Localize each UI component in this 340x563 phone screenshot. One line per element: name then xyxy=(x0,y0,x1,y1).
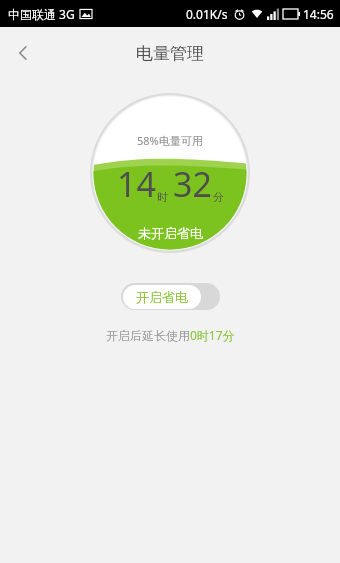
staticText: 14:56 xyxy=(303,6,334,22)
staticText: 未开启省电 xyxy=(138,225,203,241)
button[interactable]: 开启省电 xyxy=(121,283,220,310)
staticText: 开启省电 xyxy=(136,289,188,305)
staticText: 0.01K/s xyxy=(186,6,228,22)
staticText: 分 xyxy=(213,190,224,204)
button[interactable]: Back xyxy=(0,30,46,76)
staticText: 时 xyxy=(157,190,168,204)
staticText: 14 xyxy=(117,161,156,207)
staticText: 开启后延长使用0时17分 xyxy=(106,327,235,343)
staticText: 中国联通 3G xyxy=(8,6,75,22)
staticText: 58%电量可用 xyxy=(137,133,203,148)
staticText: 电量管理 xyxy=(136,43,204,64)
staticText: 32 xyxy=(173,161,212,207)
